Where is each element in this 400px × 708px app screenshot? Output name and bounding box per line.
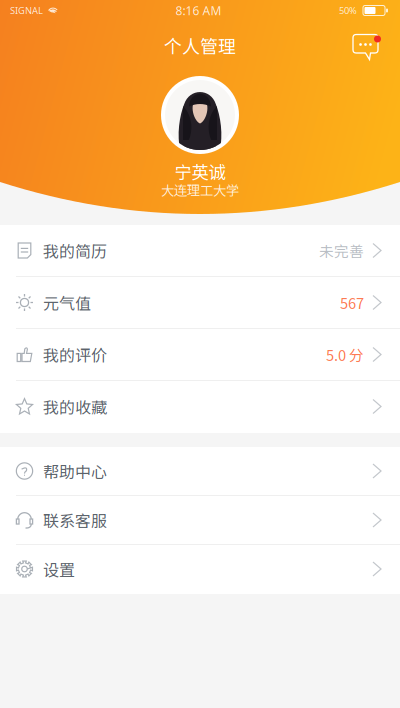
button[interactable]: 我的简历 <box>0 225 400 277</box>
staticText: 帮助中心 <box>43 459 107 483</box>
staticText: 个人管理 <box>164 32 236 59</box>
staticText: 5.0 分 <box>326 344 364 365</box>
button[interactable]: 帮助中心 <box>0 447 400 496</box>
staticText: 50% <box>339 4 357 17</box>
staticText: 设置 <box>43 557 75 581</box>
staticText: 大连理工大学 <box>161 180 239 199</box>
staticText: 我的评价 <box>43 343 107 366</box>
staticText: 宁英诚 <box>174 159 225 184</box>
staticText: SIGNAL <box>10 4 43 17</box>
staticText: 567 <box>340 292 364 313</box>
staticText: 我的简历 <box>43 239 107 262</box>
staticText: 我的收藏 <box>43 395 107 418</box>
button[interactable]: 我的评价 <box>0 329 400 381</box>
button[interactable]: 设置 <box>0 545 400 594</box>
staticText: 联系客服 <box>43 508 107 532</box>
button[interactable]: 联系客服 <box>0 496 400 545</box>
staticText: 未完善 <box>319 240 364 261</box>
staticText: 8:16 AM <box>175 2 221 19</box>
button[interactable]: 元气值 <box>0 277 400 329</box>
button[interactable]: 我的收藏 <box>0 381 400 433</box>
staticText: 元气值 <box>43 291 91 314</box>
button[interactable]: Messages <box>343 21 391 69</box>
